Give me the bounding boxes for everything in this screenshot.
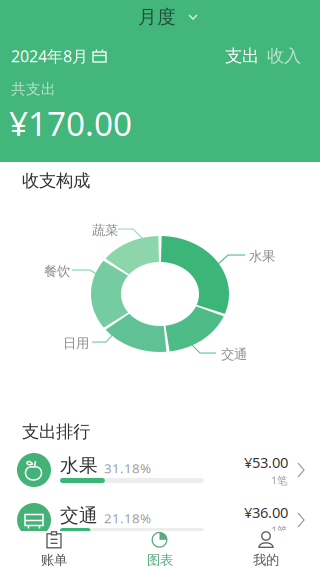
staticText: 支出排行 <box>22 421 90 442</box>
staticText: 收支构成 <box>22 170 90 191</box>
button[interactable]: 交通 <box>0 496 320 544</box>
button[interactable]: 水果 <box>0 446 320 494</box>
staticText: 1笔 <box>271 523 288 537</box>
button[interactable]: 月度 <box>133 5 203 29</box>
staticText: 交通 <box>60 504 98 527</box>
button[interactable]: 账单 <box>1 531 107 568</box>
staticText: 支出 <box>225 45 259 67</box>
staticText: 共支出 <box>11 80 56 98</box>
staticText: 2024年8月 <box>11 45 88 67</box>
staticText: 我的 <box>253 552 279 568</box>
staticText: 日用 <box>63 335 89 351</box>
staticText: 31.18% <box>104 459 151 477</box>
staticText: ¥170.00 <box>9 101 132 145</box>
staticText: 账单 <box>41 552 67 568</box>
staticText: 交通 <box>221 346 247 362</box>
staticText: 图表 <box>147 552 173 568</box>
staticText: ¥53.00 <box>244 453 288 472</box>
staticText: 餐饮 <box>44 263 70 279</box>
staticText: ¥36.00 <box>244 503 288 522</box>
staticText: 收入 <box>267 45 301 67</box>
staticText: 蔬菜 <box>92 222 118 238</box>
staticText: 月度 <box>138 5 176 28</box>
staticText: 21.18% <box>104 509 151 527</box>
staticText: 水果 <box>60 454 98 477</box>
button[interactable]: 收入 <box>264 46 304 66</box>
button[interactable]: 我的 <box>213 531 319 568</box>
button[interactable]: 支出 <box>222 46 262 66</box>
button[interactable]: 2024年8月 <box>11 46 107 66</box>
button[interactable]: 图表 <box>107 531 213 568</box>
staticText: 水果 <box>249 248 275 264</box>
staticText: 1笔 <box>271 473 288 487</box>
